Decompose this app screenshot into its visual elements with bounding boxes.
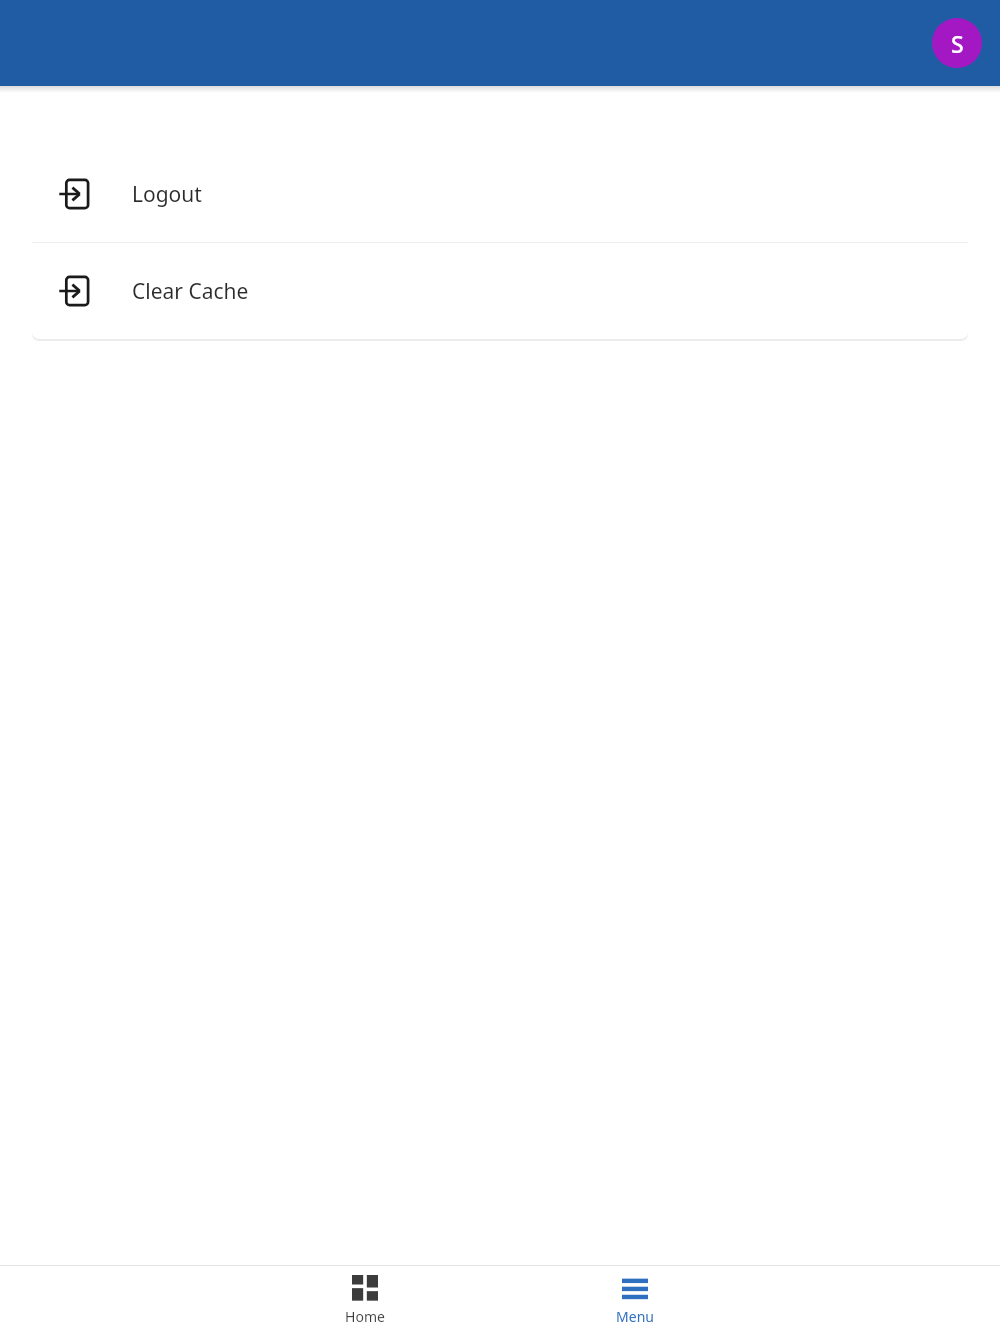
other: Menu <box>622 1275 648 1301</box>
staticText: Logout <box>132 180 202 209</box>
staticText: S <box>951 28 964 59</box>
button[interactable]: Account <box>932 18 982 68</box>
staticText: Clear Cache <box>132 277 249 306</box>
button[interactable]: Home <box>290 1275 440 1326</box>
button[interactable]: Menu <box>560 1275 710 1326</box>
button[interactable]: Clear Cache <box>32 243 968 339</box>
other: Home <box>352 1275 378 1301</box>
staticText: Home <box>345 1307 385 1326</box>
button[interactable]: Logout <box>32 146 968 242</box>
staticText: Menu <box>616 1307 654 1326</box>
